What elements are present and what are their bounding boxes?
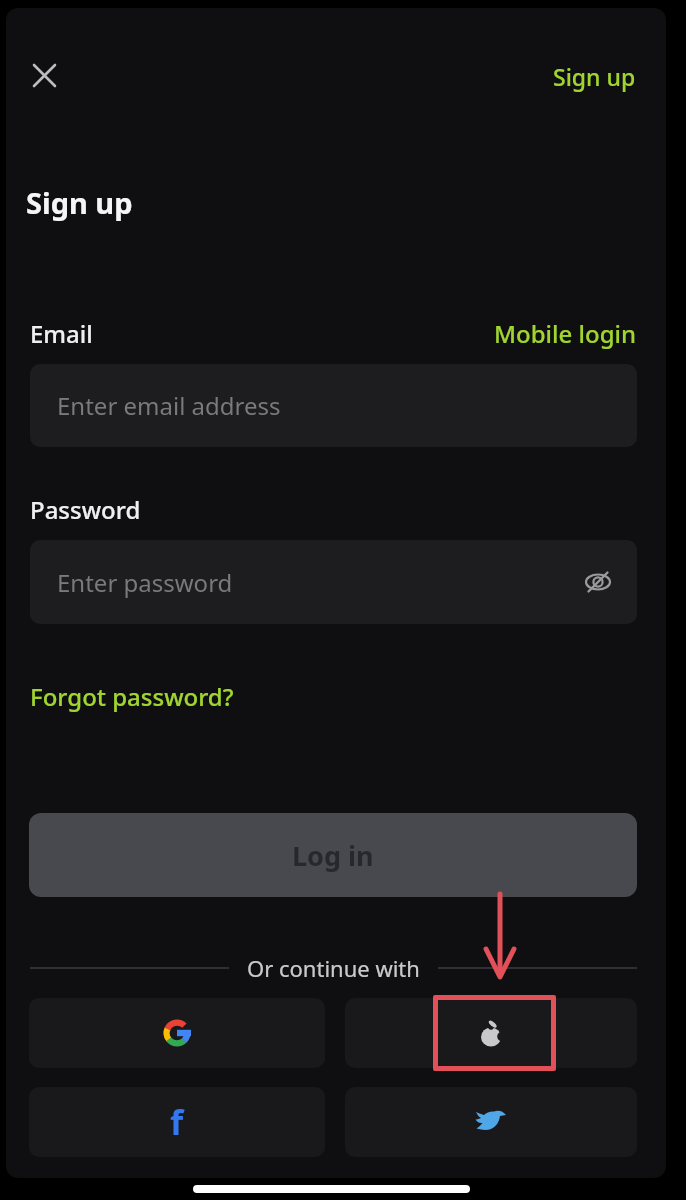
button[interactable]: Sign up xyxy=(553,61,636,92)
staticText: Forgot password? xyxy=(30,680,234,713)
button[interactable] xyxy=(345,998,637,1068)
staticText: Mobile login xyxy=(494,317,637,350)
button[interactable]: f xyxy=(29,1087,325,1157)
staticText: Enter password xyxy=(57,566,233,599)
staticText: Sign up xyxy=(553,61,636,92)
button[interactable] xyxy=(25,56,63,94)
staticText: Password xyxy=(30,493,141,526)
button[interactable]: Enter email address xyxy=(30,364,637,447)
button[interactable]: Enter password xyxy=(30,540,637,624)
staticText: Enter email address xyxy=(57,389,281,422)
button[interactable] xyxy=(29,998,325,1068)
staticText: Sign up xyxy=(26,183,133,222)
staticText: f xyxy=(170,1099,184,1145)
staticText: Email xyxy=(30,317,93,350)
button[interactable]: Forgot password? xyxy=(30,680,234,713)
staticText: Log in xyxy=(292,837,374,874)
button[interactable]: Log in xyxy=(29,813,637,897)
button[interactable] xyxy=(345,1087,637,1157)
button[interactable]: Mobile login xyxy=(494,317,637,350)
button[interactable] xyxy=(583,567,613,597)
staticText: Or continue with xyxy=(247,953,420,983)
